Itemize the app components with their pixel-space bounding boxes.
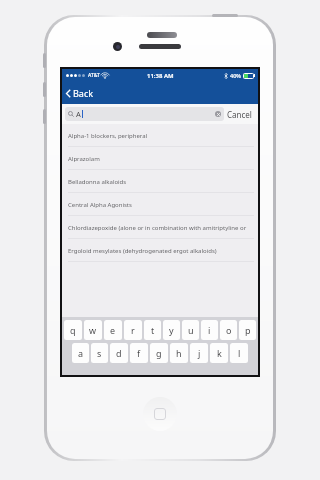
button[interactable]: Home (143, 397, 177, 431)
button[interactable]: y (163, 320, 180, 340)
staticText: Cancel (227, 109, 252, 120)
button[interactable]: i (201, 320, 218, 340)
staticText: a (78, 347, 84, 359)
button[interactable]: o (220, 320, 237, 340)
staticText: Ergoloid mesylates (dehydrogenated ergot… (68, 247, 217, 255)
button[interactable]: Alprazolam (62, 147, 258, 170)
button[interactable]: Cancel (224, 106, 255, 123)
button[interactable]: e (104, 320, 122, 340)
staticText: 11:38 AM (147, 72, 174, 80)
staticText: o (226, 324, 232, 336)
staticText: A (76, 109, 81, 119)
button[interactable]: l (230, 343, 248, 363)
button[interactable]: u (182, 320, 199, 340)
button[interactable]: a (72, 343, 89, 363)
staticText: h (176, 347, 182, 359)
staticText: Central Alpha Agonists (68, 201, 132, 209)
button[interactable]: Chlordiazepoxide (alone or in combinatio… (62, 216, 258, 239)
button[interactable]: h (170, 343, 188, 363)
staticText: Chlordiazepoxide (alone or in combinatio… (68, 224, 254, 232)
button[interactable]: k (210, 343, 228, 363)
staticText: Alpha-1 blockers, peripheral (68, 132, 148, 140)
staticText: e (110, 324, 116, 336)
staticText: f (137, 347, 141, 359)
button[interactable]: q (64, 320, 82, 340)
staticText: j (198, 347, 201, 359)
staticText: k (217, 347, 222, 359)
staticText: q (70, 324, 76, 336)
button[interactable]: Clear text (215, 111, 221, 117)
staticText: 40% (230, 72, 241, 79)
staticText: d (116, 347, 122, 359)
staticText: y (169, 324, 174, 336)
button[interactable]: A (65, 107, 224, 121)
button[interactable]: r (124, 320, 142, 340)
staticText: Alprazolam (68, 155, 100, 163)
button[interactable]: p (239, 320, 256, 340)
button[interactable]: w (84, 320, 102, 340)
button[interactable]: Alpha-1 blockers, peripheral (62, 124, 258, 147)
button[interactable]: j (190, 343, 208, 363)
button[interactable]: Belladonna alkaloids (62, 170, 258, 193)
staticText: l (238, 347, 241, 359)
button[interactable]: f (130, 343, 148, 363)
button[interactable]: g (150, 343, 168, 363)
staticText: g (156, 347, 162, 359)
staticText: s (97, 347, 102, 359)
button[interactable]: t (144, 320, 161, 340)
button[interactable]: Back (62, 84, 100, 102)
staticText: u (188, 324, 194, 336)
button[interactable]: d (110, 343, 128, 363)
button[interactable]: Ergoloid mesylates (dehydrogenated ergot… (62, 239, 258, 262)
staticText: i (208, 324, 211, 336)
staticText: w (89, 324, 97, 336)
staticText: Back (73, 87, 94, 99)
staticText: p (245, 324, 251, 336)
staticText: r (131, 324, 135, 336)
staticText: AT&T (88, 72, 100, 79)
staticText: t (151, 324, 155, 336)
button[interactable]: s (91, 343, 108, 363)
button[interactable]: Central Alpha Agonists (62, 193, 258, 216)
staticText: Belladonna alkaloids (68, 178, 127, 186)
